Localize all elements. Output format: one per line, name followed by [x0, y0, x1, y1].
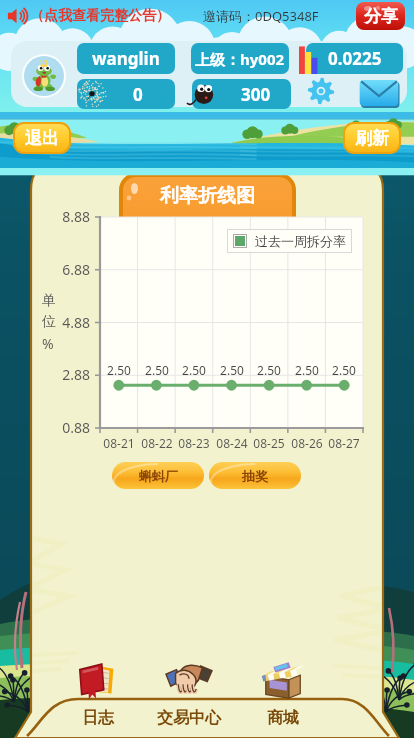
staticText: 退出 — [25, 128, 59, 149]
staticText: 0.88 — [50, 418, 90, 437]
button[interactable]: 抽奖 — [209, 462, 301, 489]
button[interactable]: 300 — [192, 79, 291, 109]
button[interactable]: 蝌蚪厂 — [112, 462, 204, 489]
staticText: 刷新 — [355, 128, 389, 149]
staticText: 分享 — [364, 6, 398, 27]
staticText: 日志 — [53, 708, 143, 728]
staticText: 商城 — [238, 708, 328, 728]
staticText: 蝌蚪厂 — [139, 468, 178, 484]
staticText: 2.50 — [288, 362, 326, 378]
staticText: 过去一周拆分率 — [255, 233, 346, 249]
staticText: 08-24 — [213, 435, 251, 451]
staticText: 08-26 — [288, 435, 326, 451]
staticText: 08-25 — [250, 435, 288, 451]
staticText: 0 — [133, 83, 143, 106]
staticText: % — [42, 334, 54, 353]
button[interactable]: 退出 — [15, 124, 69, 152]
staticText: 08-27 — [325, 435, 363, 451]
button[interactable]: 商城 — [238, 654, 328, 738]
staticText: 2.50 — [325, 362, 363, 378]
button[interactable]: 日志 — [53, 654, 143, 738]
button[interactable]: Settings — [306, 76, 336, 106]
button[interactable]: wanglin — [77, 43, 175, 74]
staticText: 2.50 — [100, 362, 138, 378]
button[interactable]: 分享 — [356, 2, 405, 30]
staticText: 抽奖 — [242, 468, 268, 484]
staticText: 08-23 — [175, 435, 213, 451]
button[interactable]: 刷新 — [345, 124, 399, 152]
staticText: 上级：hy002 — [195, 49, 285, 69]
staticText: 单 — [42, 292, 56, 310]
button[interactable]: （点我查看完整公告） — [6, 6, 170, 26]
staticText: 6.88 — [50, 260, 90, 279]
button[interactable]: 利率折线图 — [123, 177, 292, 223]
button[interactable]: 上级：hy002 — [191, 43, 289, 74]
staticText: 300 — [241, 83, 271, 106]
staticText: 2.88 — [50, 365, 90, 384]
staticText: 08-22 — [138, 435, 176, 451]
staticText: 邀请码：0DQ5348F — [203, 7, 319, 25]
button[interactable]: Messages — [358, 77, 400, 109]
staticText: 08-21 — [100, 435, 138, 451]
staticText: 2.50 — [213, 362, 251, 378]
staticText: 交易中心 — [144, 708, 234, 728]
staticText: wanglin — [92, 47, 160, 70]
staticText: 2.50 — [250, 362, 288, 378]
staticText: （点我查看完整公告） — [30, 7, 170, 25]
staticText: 0.0225 — [328, 47, 382, 70]
staticText: 位 — [42, 313, 56, 331]
button[interactable]: 交易中心 — [144, 654, 234, 738]
staticText: 2.50 — [138, 362, 176, 378]
staticText: 利率折线图 — [160, 184, 255, 208]
staticText: 8.88 — [50, 207, 90, 226]
button[interactable]: 0 — [77, 79, 175, 109]
staticText: 4.88 — [50, 313, 90, 332]
button[interactable]: 0.0225 — [306, 43, 403, 74]
staticText: 2.50 — [175, 362, 213, 378]
button[interactable]: Avatar — [24, 56, 64, 96]
